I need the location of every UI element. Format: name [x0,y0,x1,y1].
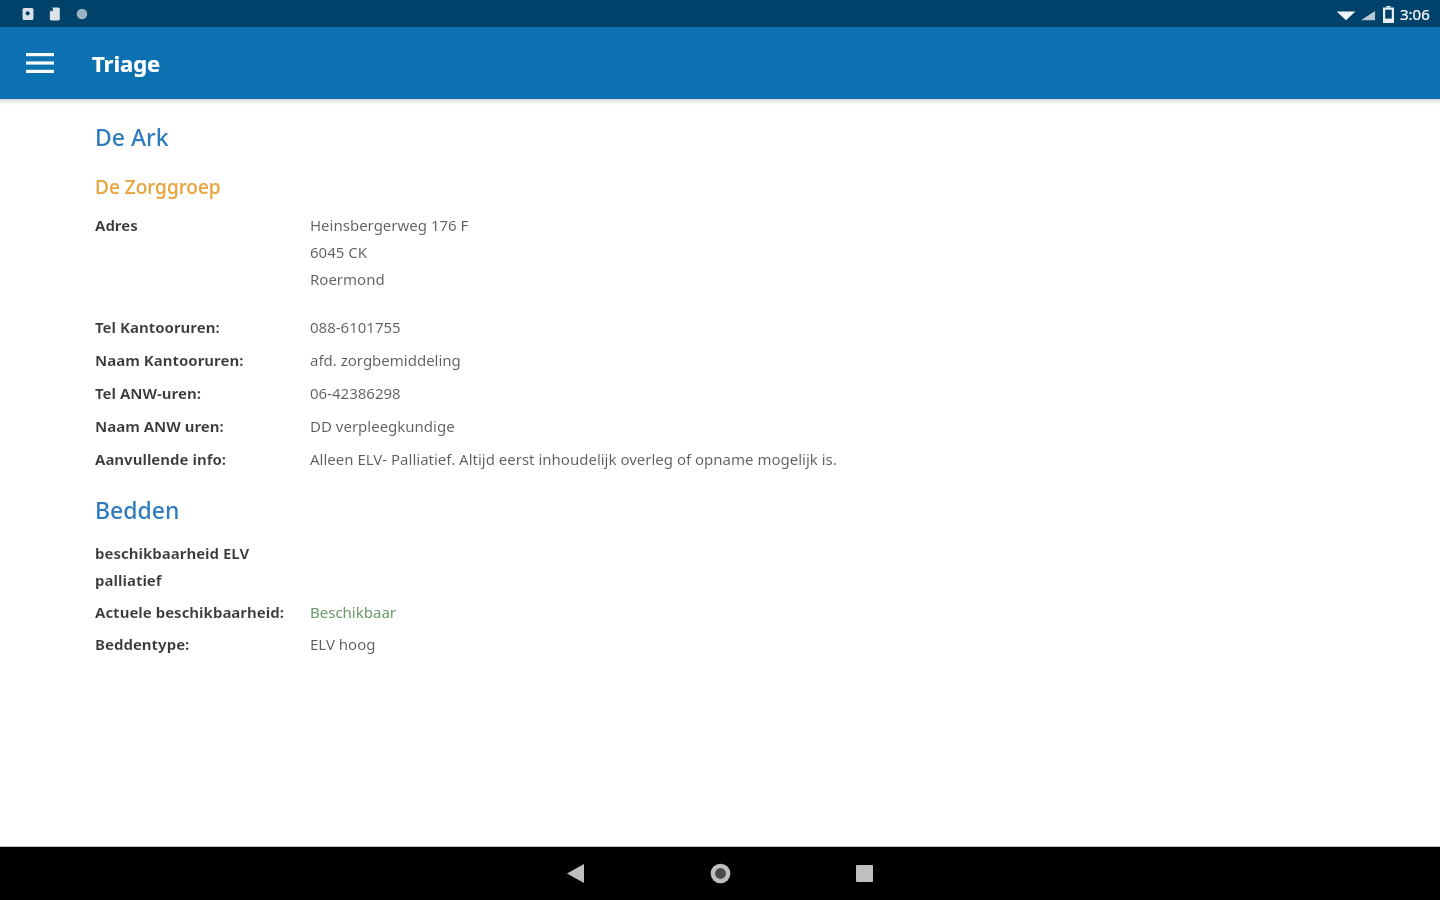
staticText: Beddentype: [95,634,190,654]
staticText: beschikbaarheid ELV [95,543,250,563]
button[interactable]: Beddentype: [95,634,1416,654]
button[interactable]: Back [545,847,605,900]
staticText: Tel Kantooruren: [95,317,220,337]
button[interactable]: Tel Kantooruren: [95,317,1416,337]
staticText: Roermond [310,269,385,289]
button[interactable]: Recent apps [834,847,894,900]
staticText: Aanvullende info: [95,449,227,469]
button[interactable]: Bedden [95,494,180,525]
staticText: Triage [92,48,161,78]
staticText: 3:06 [1400,4,1430,24]
staticText: Alleen ELV- Palliatief. Altijd eerst inh… [310,449,837,469]
button[interactable]: Home [690,847,750,900]
staticText: Naam Kantooruren: [95,350,244,370]
button[interactable]: Naam Kantooruren: [95,350,1416,370]
staticText: DD verpleegkundige [310,416,455,436]
button[interactable]: Actuele beschikbaarheid: [95,602,1416,622]
staticText: ELV hoog [310,634,376,654]
staticText: Heinsbergerweg 176 F [310,215,469,235]
staticText: palliatief [95,570,162,590]
button[interactable]: Tel ANW-uren: [95,383,1416,403]
staticText: Actuele beschikbaarheid: [95,602,284,622]
staticText: 6045 CK [310,242,367,262]
staticText: Adres [95,215,138,235]
staticText: 06-42386298 [310,383,401,403]
button[interactable]: De Ark [95,121,169,152]
staticText: Naam ANW uren: [95,416,224,436]
staticText: Tel ANW-uren: [95,383,201,403]
button[interactable]: Naam ANW uren: [95,416,1416,436]
staticText: De Zorggroep [95,174,221,200]
staticText: 088-6101755 [310,317,401,337]
button[interactable]: Aanvullende info: [95,449,1416,469]
staticText: afd. zorgbemiddeling [310,350,461,370]
button[interactable]: Open navigation menu [14,37,66,89]
staticText: Beschikbaar [310,602,396,622]
